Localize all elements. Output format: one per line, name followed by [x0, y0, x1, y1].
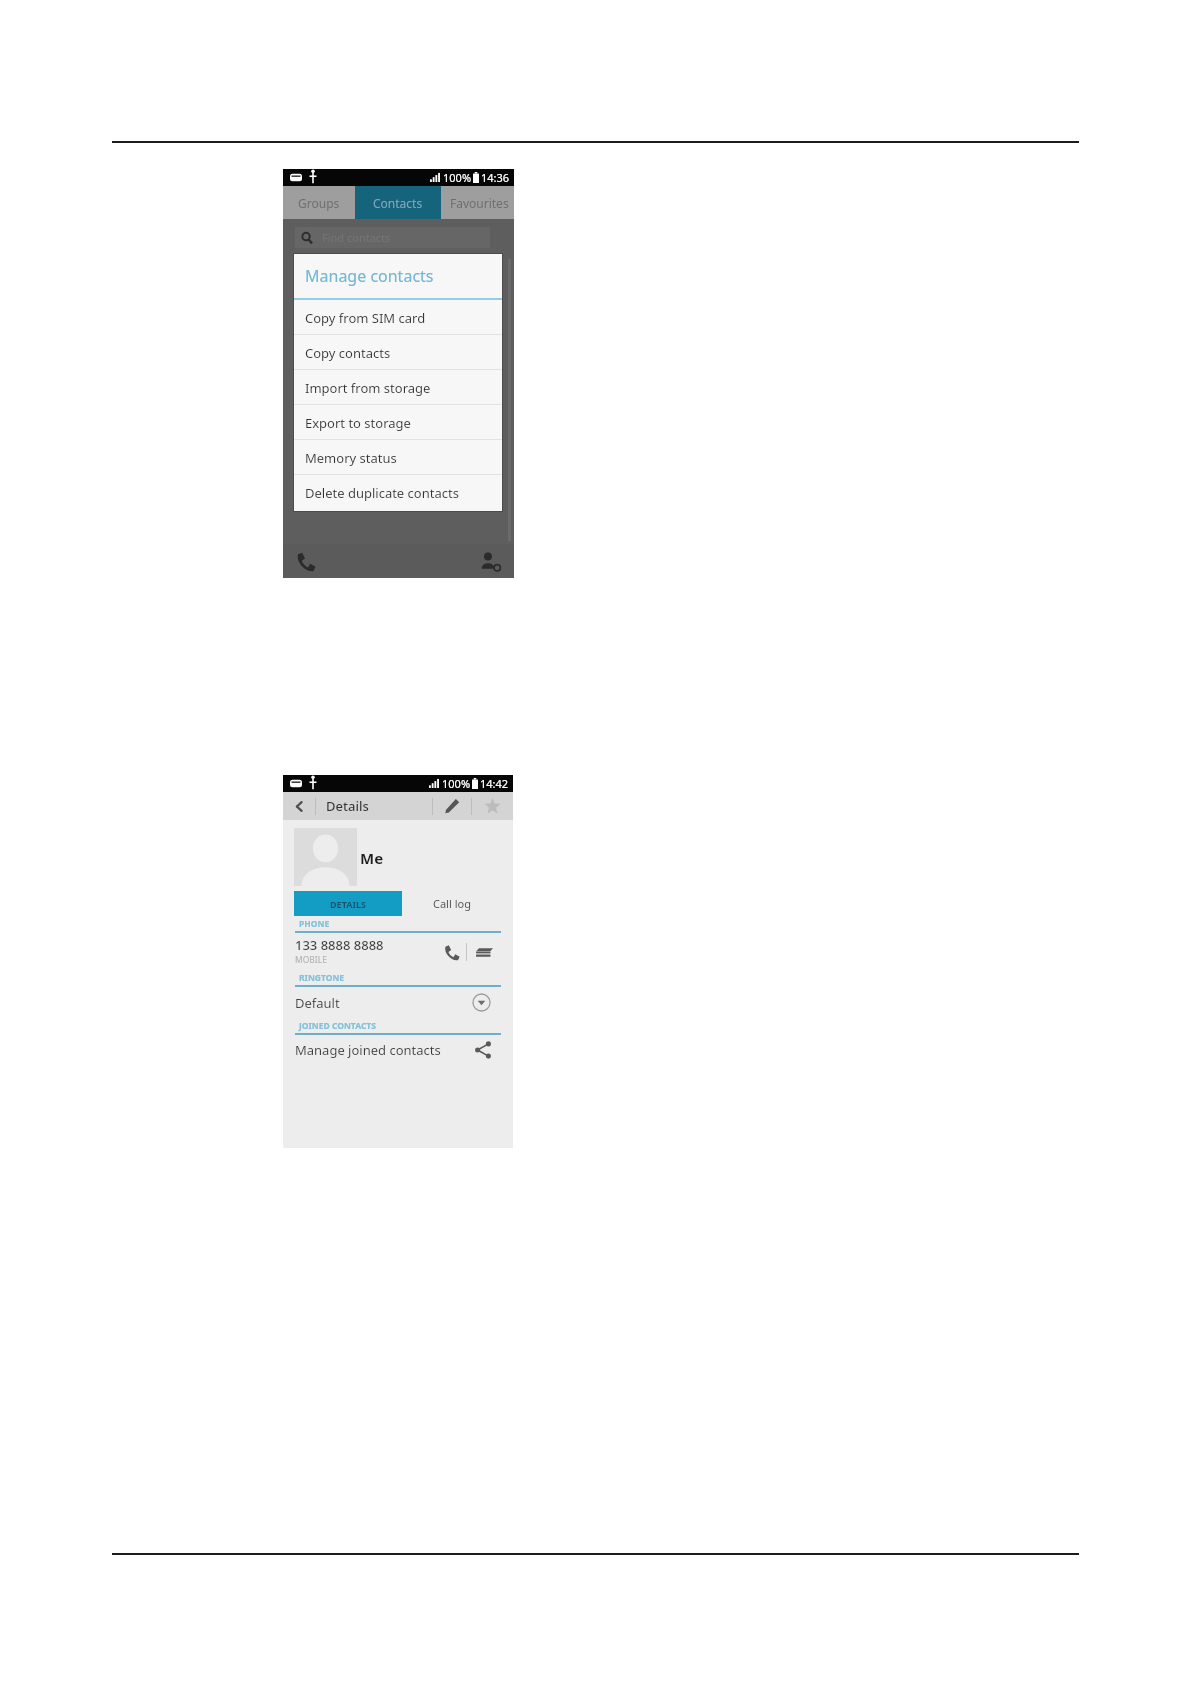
staticText: Delete duplicate contacts [305, 484, 459, 502]
staticText: Groups [298, 195, 340, 211]
staticText: MOBILE [295, 954, 327, 966]
staticText: RINGTONE [299, 972, 345, 984]
staticText: Favourites [450, 195, 509, 211]
staticText: Copy from SIM card [305, 309, 426, 327]
button[interactable]: Send message [467, 939, 501, 965]
button[interactable]: Dialer [293, 549, 318, 574]
button[interactable]: Back [283, 792, 315, 820]
staticText: 100% [443, 170, 472, 185]
button[interactable]: Favourites [441, 186, 514, 219]
staticText: Export to storage [305, 414, 411, 432]
button[interactable]: Contact photo [294, 828, 357, 886]
staticText: Manage contacts [305, 265, 434, 287]
staticText: Copy contacts [305, 344, 391, 362]
button[interactable]: Export to storage [294, 405, 502, 440]
staticText: Default [295, 994, 340, 1012]
button[interactable]: Manage joined contacts [295, 1035, 501, 1065]
staticText: Memory status [305, 449, 397, 467]
staticText: 133 8888 8888 [295, 936, 384, 954]
staticText: Manage joined contacts [295, 1041, 441, 1059]
button[interactable]: Import from storage [294, 370, 502, 405]
button[interactable]: Default [295, 987, 501, 1018]
staticText: Details [326, 797, 369, 815]
button[interactable]: Copy from SIM card [294, 300, 502, 335]
staticText: Find contacts [322, 230, 391, 245]
staticText: 14:42 [480, 776, 509, 791]
staticText: PHONE [299, 918, 330, 930]
button[interactable]: Add to favourites [472, 792, 513, 820]
staticText: DETAILS [330, 898, 366, 910]
button[interactable]: DETAILS [294, 891, 402, 916]
button[interactable]: Call [436, 939, 466, 965]
staticText: 14:36 [481, 170, 510, 185]
button[interactable]: Call log [402, 891, 502, 916]
button[interactable]: Delete duplicate contacts [294, 475, 502, 510]
staticText: Import from storage [305, 379, 431, 397]
button[interactable]: Add contact [478, 549, 503, 574]
button[interactable]: Groups [283, 186, 355, 219]
staticText: Me [360, 848, 384, 868]
staticText: 100% [442, 776, 471, 791]
button[interactable]: Contacts [355, 186, 441, 219]
staticText: Contacts [373, 195, 423, 211]
staticText: JOINED CONTACTS [299, 1020, 376, 1032]
button[interactable]: Edit [433, 792, 471, 820]
button[interactable]: Find contacts [295, 227, 490, 248]
staticText: Call log [433, 896, 471, 911]
button[interactable]: Memory status [294, 440, 502, 475]
button[interactable]: 133 8888 8888 [295, 933, 501, 970]
button[interactable]: Copy contacts [294, 335, 502, 370]
